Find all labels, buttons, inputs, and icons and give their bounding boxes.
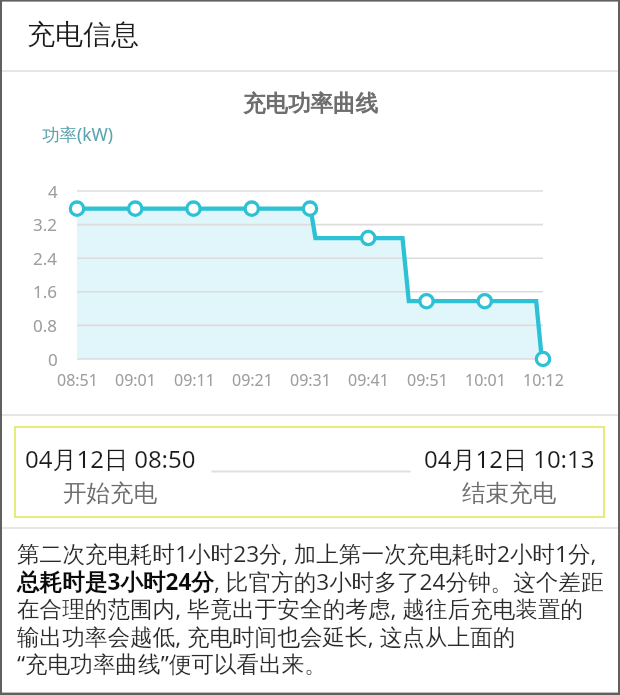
staticText: 3.2 [33,213,58,236]
staticText: “充电功率曲线”便可以看出来。 [17,648,327,679]
staticText: 09:51 [407,369,448,391]
staticText: 0 [48,348,58,371]
staticText: 1.6 [33,280,58,303]
staticText: 在合理的范围内, 毕竟出于安全的考虑, 越往后充电装置的 [17,593,584,624]
staticText: 09:21 [232,369,273,391]
staticText: 2.4 [33,247,58,270]
staticText: 充电功率曲线 [243,89,378,117]
button[interactable]: 充电信息 [0,0,620,71]
staticText: 09:41 [348,369,389,391]
staticText: 09:31 [290,369,331,391]
staticText: 4 [48,180,58,203]
staticText: 04月12日 08:50 [25,442,196,475]
staticText: 总耗时是3小时24分, 比官方的3小时多了24分钟。这个差距 [17,566,604,597]
staticText: 输出功率会越低, 充电时间也会延长, 这点从上面的 [17,621,516,652]
staticText: 09:01 [115,369,156,391]
staticText: 10:01 [465,369,506,391]
staticText: 功率(kW) [42,122,114,146]
staticText: 08:51 [57,369,98,391]
button[interactable]: 04月12日 08:50 [15,427,604,517]
staticText: 结束充电 [462,478,556,508]
staticText: 开始充电 [63,478,157,508]
staticText: 04月12日 10:13 [424,442,595,475]
staticText: 09:11 [174,369,215,391]
staticText: 0.8 [33,314,58,337]
staticText: 充电信息 [27,17,139,52]
staticText: 第二次充电耗时1小时23分, 加上第一次充电耗时2小时1分, [17,538,597,569]
staticText: 10:12 [523,369,564,391]
